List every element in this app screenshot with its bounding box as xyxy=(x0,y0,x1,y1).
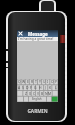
staticText: A xyxy=(18,85,21,90)
staticText: I'm having a great time! xyxy=(18,37,54,41)
staticText: O xyxy=(51,79,54,84)
staticText: T xyxy=(35,79,37,84)
staticText: B xyxy=(41,91,44,96)
staticText: G xyxy=(34,85,37,90)
staticText: R xyxy=(31,79,34,84)
staticText: J xyxy=(45,85,46,90)
staticText: Y xyxy=(39,79,41,84)
staticText: P xyxy=(55,79,58,84)
staticText: X xyxy=(29,91,31,96)
other: Close xyxy=(18,31,23,36)
staticText: V xyxy=(37,91,40,96)
staticText: K xyxy=(49,85,52,90)
button[interactable]: Message xyxy=(17,30,58,37)
staticText: C xyxy=(33,91,36,96)
staticText: W xyxy=(22,79,26,84)
staticText: I xyxy=(47,79,49,84)
staticText: S xyxy=(22,85,24,90)
staticText: E xyxy=(27,79,29,84)
staticText: Message xyxy=(28,31,48,37)
staticText: GARMIN xyxy=(27,108,48,114)
staticText: Q xyxy=(18,79,21,84)
staticText: L xyxy=(55,85,57,90)
button[interactable] xyxy=(17,79,58,102)
staticText: D xyxy=(26,85,29,90)
staticText: N xyxy=(45,91,48,96)
staticText: U xyxy=(43,79,46,84)
staticText: English xyxy=(32,97,42,101)
staticText: H xyxy=(39,85,42,90)
staticText: Z xyxy=(25,91,27,96)
staticText: F xyxy=(30,85,32,90)
staticText: M xyxy=(48,91,52,96)
